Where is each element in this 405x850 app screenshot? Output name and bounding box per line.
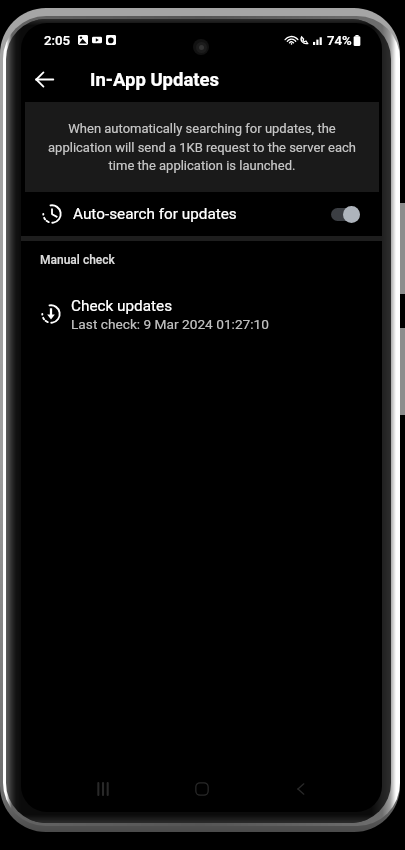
staticText: Manual check	[40, 253, 115, 267]
staticText: Auto-search for updates	[73, 205, 237, 223]
staticText: Last check: 9 Mar 2024 01:27:10	[71, 316, 269, 332]
staticText: Check updates	[71, 297, 173, 315]
button[interactable]: Auto-search for updates	[21, 192, 382, 236]
staticText: In-App Updates	[90, 69, 220, 91]
button[interactable]: Back	[21, 57, 67, 102]
button[interactable]: Check updates	[21, 286, 382, 342]
button[interactable]: Home	[152, 772, 251, 806]
staticText: 74%	[327, 33, 352, 48]
staticText: When automatically searching for updates…	[45, 121, 359, 173]
staticText: 2:05	[44, 33, 70, 48]
button[interactable]: Recents	[53, 772, 152, 806]
